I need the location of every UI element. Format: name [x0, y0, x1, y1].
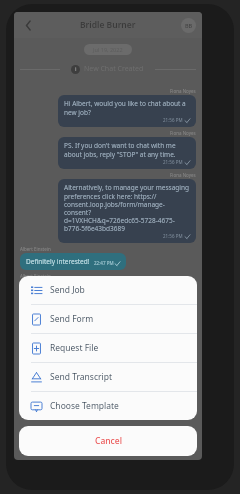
button[interactable]: Back: [18, 15, 38, 35]
button[interactable]: Send Transcript: [19, 363, 197, 391]
staticText: 21:56 PM: [163, 159, 183, 165]
staticText: 21:56 PM: [163, 233, 183, 239]
staticText: Bridle Burner: [80, 19, 136, 31]
staticText: Jul 19, 2022: [93, 46, 123, 53]
button[interactable]: Alternatively, to manage your messaging …: [58, 179, 196, 243]
button[interactable]: Request File: [19, 334, 197, 362]
button[interactable]: Contact avatar: [181, 18, 196, 33]
staticText: Send Transcript: [50, 371, 112, 383]
staticText: Definitely interested!: [26, 257, 90, 266]
staticText: Fiona Noyes: [170, 130, 196, 136]
button[interactable]: PS. If you don't want to chat with me ab…: [58, 137, 196, 169]
staticText: Albert Einstein: [20, 273, 51, 279]
staticText: PS. If you don't want to chat with me ab…: [64, 141, 190, 159]
button[interactable]: Hi Albert, would you like to chat about …: [58, 95, 196, 127]
button[interactable]: What's the job?: [20, 280, 109, 297]
staticText: Choose Template: [50, 400, 119, 412]
staticText: i: [75, 66, 77, 73]
staticText: Fiona Noyes: [170, 88, 196, 94]
staticText: 21:56 PM: [163, 117, 183, 123]
button[interactable]: Definitely interested!: [20, 253, 126, 270]
staticText: Send Form: [50, 313, 94, 325]
button[interactable]: Cancel: [19, 426, 197, 456]
staticText: New Chat Created: [84, 64, 144, 74]
staticText: Cancel: [95, 435, 122, 447]
staticText: Alternatively, to manage your messaging …: [64, 183, 190, 233]
staticText: 22:47 PM: [77, 287, 97, 293]
staticText: BB: [185, 22, 193, 29]
staticText: Send Job: [50, 284, 85, 296]
staticText: Fiona Noyes: [170, 172, 196, 178]
staticText: 22:47 PM: [94, 260, 114, 266]
staticText: Request File: [50, 342, 99, 354]
button[interactable]: Send Form: [19, 305, 197, 333]
staticText: Hi Albert, would you like to chat about …: [64, 99, 190, 117]
staticText: Albert Einstein: [20, 246, 51, 252]
button[interactable]: Choose Template: [19, 392, 197, 420]
staticText: What's the job?: [26, 284, 73, 293]
button[interactable]: Send Job: [19, 276, 197, 304]
